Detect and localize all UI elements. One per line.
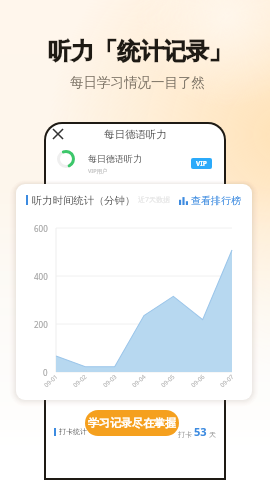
staticText: 学习记录尽在掌握 bbox=[88, 416, 176, 430]
staticText: 09-01 bbox=[42, 373, 60, 389]
button[interactable]: Close bbox=[52, 128, 64, 140]
staticText: 打卡 bbox=[178, 430, 192, 439]
staticText: 听力时间统计（分钟） bbox=[32, 194, 135, 207]
staticText: 查看排行榜 bbox=[191, 194, 241, 207]
staticText: 0 bbox=[43, 367, 48, 378]
staticText: 600 bbox=[34, 223, 48, 234]
staticText: 听力「统计记录」 bbox=[48, 37, 232, 66]
staticText: 200 bbox=[34, 319, 48, 330]
staticText: 打卡统计 bbox=[59, 427, 87, 436]
staticText: 09-03 bbox=[101, 373, 119, 389]
staticText: 每日学习情况一目了然 bbox=[70, 74, 205, 91]
staticText: 09-06 bbox=[189, 373, 207, 389]
staticText: 09-07 bbox=[218, 373, 236, 389]
staticText: 每日德语听力 bbox=[88, 153, 142, 164]
staticText: 每日德语听力 bbox=[104, 128, 167, 141]
staticText: 09-02 bbox=[71, 373, 89, 389]
button[interactable]: 查看排行榜 bbox=[179, 194, 241, 207]
staticText: 天 bbox=[209, 430, 216, 439]
staticText: 09-05 bbox=[159, 373, 177, 389]
button[interactable]: 学习记录尽在掌握 bbox=[85, 410, 179, 436]
staticText: 400 bbox=[34, 271, 48, 282]
staticText: VIP用户 bbox=[88, 167, 108, 175]
staticText: 近7天数据 bbox=[138, 195, 171, 205]
button[interactable]: VIP bbox=[191, 158, 212, 169]
staticText: VIP bbox=[196, 159, 207, 168]
staticText: 53 bbox=[194, 424, 207, 439]
staticText: 09-04 bbox=[130, 373, 148, 389]
